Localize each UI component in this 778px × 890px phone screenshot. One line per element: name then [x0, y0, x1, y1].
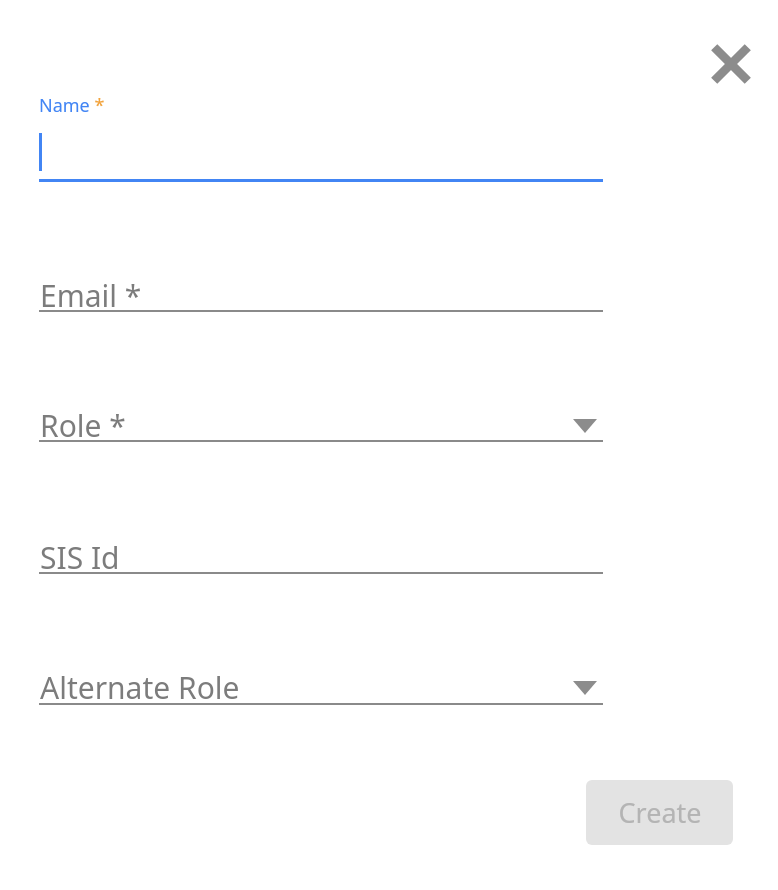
- button[interactable]: Name *: [39, 90, 603, 182]
- staticText: Name *: [39, 93, 105, 118]
- staticText: Role *: [40, 405, 126, 446]
- button[interactable]: Email *: [39, 265, 603, 325]
- button[interactable]: Close: [703, 36, 759, 92]
- button[interactable]: Alternate Role: [39, 657, 603, 717]
- staticText: Email *: [40, 275, 142, 316]
- button[interactable]: Create: [586, 780, 733, 845]
- button[interactable]: Role *: [39, 395, 603, 455]
- staticText: Alternate Role: [40, 667, 240, 708]
- staticText: Create: [618, 794, 702, 831]
- staticText: SIS Id: [40, 537, 120, 578]
- button[interactable]: SIS Id: [39, 527, 603, 587]
